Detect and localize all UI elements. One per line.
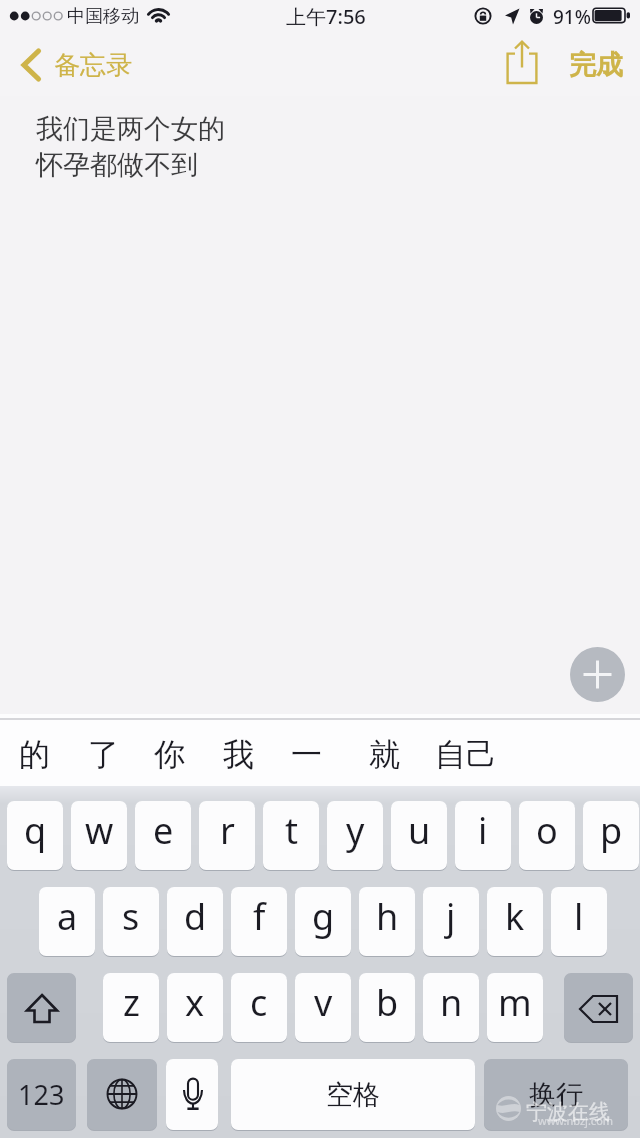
staticText: f bbox=[253, 892, 266, 941]
button[interactable]: b bbox=[359, 973, 415, 1042]
staticText: 的 bbox=[19, 735, 50, 774]
staticText: x bbox=[185, 978, 205, 1027]
button[interactable]: g bbox=[295, 887, 351, 956]
button[interactable]: n bbox=[423, 973, 479, 1042]
staticText: 91% bbox=[553, 4, 591, 30]
button[interactable]: 就 bbox=[362, 722, 406, 786]
button[interactable]: 切换输入法 bbox=[87, 1059, 157, 1130]
button[interactable]: m bbox=[487, 973, 543, 1042]
button[interactable]: 完成 bbox=[560, 34, 632, 96]
button[interactable]: p bbox=[583, 801, 639, 870]
staticText: 我 bbox=[223, 735, 254, 774]
button[interactable]: 123 bbox=[7, 1059, 76, 1130]
staticText: k bbox=[505, 892, 525, 941]
staticText: v bbox=[314, 978, 333, 1027]
button[interactable]: c bbox=[231, 973, 287, 1042]
staticText: j bbox=[446, 892, 456, 941]
button[interactable]: e bbox=[135, 801, 191, 870]
button[interactable]: a bbox=[39, 887, 95, 956]
staticText: u bbox=[408, 806, 431, 855]
staticText: 自己 bbox=[435, 735, 497, 774]
staticText: www.nbzj.com bbox=[538, 1113, 614, 1128]
button[interactable]: 分享 bbox=[495, 34, 551, 96]
button[interactable]: j bbox=[423, 887, 479, 956]
staticText: 上午7:56 bbox=[286, 3, 366, 30]
staticText: h bbox=[376, 892, 399, 941]
staticText: 备忘录 bbox=[54, 49, 132, 82]
button[interactable]: 空格 bbox=[231, 1059, 475, 1130]
button[interactable]: 语音输入 bbox=[166, 1059, 218, 1130]
button[interactable]: t bbox=[263, 801, 319, 870]
staticText: i bbox=[478, 806, 488, 855]
button[interactable]: 的 bbox=[12, 722, 56, 786]
button[interactable]: 删除 bbox=[564, 973, 633, 1042]
button[interactable]: d bbox=[167, 887, 223, 956]
staticText: c bbox=[250, 978, 268, 1027]
staticText: q bbox=[24, 806, 47, 855]
staticText: m bbox=[498, 978, 532, 1027]
button[interactable]: v bbox=[295, 973, 351, 1042]
button[interactable]: o bbox=[519, 801, 575, 870]
button[interactable]: l bbox=[551, 887, 607, 956]
button[interactable]: s bbox=[103, 887, 159, 956]
button[interactable]: k bbox=[487, 887, 543, 956]
staticText: g bbox=[312, 892, 335, 941]
button[interactable]: 一 bbox=[284, 722, 328, 786]
staticText: y bbox=[346, 806, 365, 855]
staticText: e bbox=[153, 806, 174, 855]
staticText: w bbox=[85, 806, 114, 855]
button[interactable]: x bbox=[167, 973, 223, 1042]
staticText: 就 bbox=[369, 735, 400, 774]
staticText: o bbox=[536, 806, 558, 855]
staticText: d bbox=[184, 892, 207, 941]
button[interactable]: y bbox=[327, 801, 383, 870]
button[interactable]: 添加 bbox=[570, 647, 625, 702]
staticText: p bbox=[600, 806, 623, 855]
staticText: 换行 bbox=[529, 1078, 583, 1112]
staticText: z bbox=[123, 978, 140, 1027]
staticText: b bbox=[376, 978, 399, 1027]
staticText: r bbox=[220, 806, 235, 855]
staticText: n bbox=[440, 978, 463, 1027]
button[interactable]: w bbox=[71, 801, 127, 870]
staticText: l bbox=[574, 892, 584, 941]
button[interactable]: h bbox=[359, 887, 415, 956]
staticText: s bbox=[122, 892, 140, 941]
button[interactable]: r bbox=[199, 801, 255, 870]
button[interactable]: i bbox=[455, 801, 511, 870]
staticText: 中国移动 bbox=[67, 5, 139, 28]
button[interactable]: u bbox=[391, 801, 447, 870]
staticText: t bbox=[285, 806, 298, 855]
staticText: 了 bbox=[88, 735, 119, 774]
staticText: 你 bbox=[154, 735, 185, 774]
staticText: 宁波在线 bbox=[526, 1099, 610, 1125]
staticText: 我们是两个女的 bbox=[36, 112, 225, 146]
staticText: 空格 bbox=[326, 1078, 380, 1112]
button[interactable]: Shift bbox=[7, 973, 76, 1042]
staticText: 123 bbox=[18, 1076, 65, 1113]
button[interactable]: 备忘录 bbox=[0, 41, 142, 89]
button[interactable]: f bbox=[231, 887, 287, 956]
button[interactable]: 了 bbox=[81, 722, 125, 786]
staticText: 怀孕都做不到 bbox=[36, 148, 198, 182]
staticText: a bbox=[57, 892, 78, 941]
button[interactable]: 我 bbox=[216, 722, 260, 786]
staticText: 完成 bbox=[569, 48, 623, 82]
staticText: 一 bbox=[291, 735, 322, 774]
button[interactable]: q bbox=[7, 801, 63, 870]
button[interactable]: z bbox=[103, 973, 159, 1042]
button[interactable]: 你 bbox=[147, 722, 191, 786]
button[interactable]: 自己 bbox=[428, 722, 504, 786]
button[interactable]: 换行 bbox=[484, 1059, 628, 1130]
